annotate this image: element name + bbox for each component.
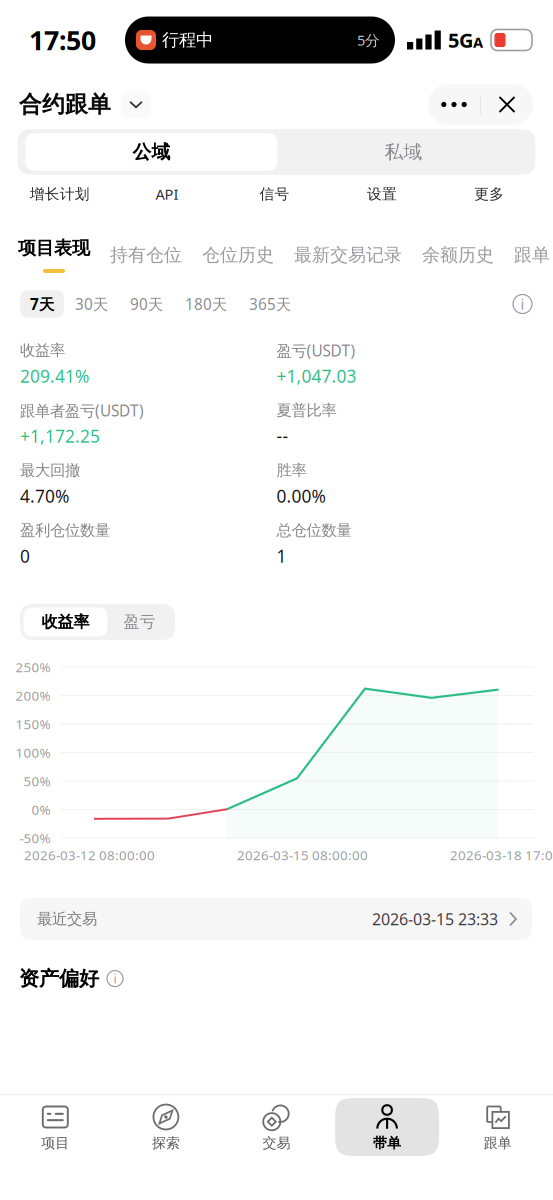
button[interactable]: 跟单 xyxy=(442,1098,553,1156)
staticText: +1,047.03 xyxy=(276,364,356,388)
staticText: 资产偏好 xyxy=(19,966,99,991)
button[interactable]: 30天 xyxy=(64,290,119,318)
staticText: 150% xyxy=(15,715,50,733)
staticText: i xyxy=(113,970,116,987)
staticText: -50% xyxy=(19,829,50,847)
staticText: 90天 xyxy=(130,294,163,314)
staticText: 17:50 xyxy=(29,22,96,58)
staticText: 209.41% xyxy=(20,364,89,388)
staticText: 最大回撤 xyxy=(20,461,80,480)
staticText: 100% xyxy=(15,743,50,762)
button[interactable]: 设置 xyxy=(328,179,436,209)
staticText: 5分 xyxy=(357,30,380,50)
staticText: 项目 xyxy=(41,1134,69,1152)
button[interactable]: 365天 xyxy=(238,290,302,318)
staticText: 持有仓位 xyxy=(110,244,182,266)
staticText: 盈利仓位数量 xyxy=(20,521,110,540)
staticText: 探索 xyxy=(152,1134,180,1152)
staticText: 7天 xyxy=(30,294,54,314)
staticText: 50% xyxy=(23,772,50,790)
button[interactable]: 90天 xyxy=(119,290,174,318)
button[interactable]: 项目表现 xyxy=(18,237,110,273)
button[interactable]: 7天 xyxy=(20,290,64,318)
staticText: +1,172.25 xyxy=(20,424,100,448)
staticText: 4.70% xyxy=(20,484,69,508)
staticText: 盈亏(USDT) xyxy=(276,340,355,361)
staticText: 200% xyxy=(15,686,50,705)
staticText: i xyxy=(520,294,524,314)
staticText: 2026-03-15 08:00:00 xyxy=(237,846,368,864)
button[interactable]: 交易 xyxy=(221,1098,332,1156)
button[interactable]: 仓位历史 xyxy=(202,244,294,266)
button[interactable]: 私域 xyxy=(277,133,535,171)
button[interactable]: 最新交易记录 xyxy=(294,244,422,266)
staticText: 30天 xyxy=(75,294,108,314)
staticText: 公域 xyxy=(132,140,170,164)
staticText: 2026-03-12 08:00:00 xyxy=(24,846,155,864)
staticText: 余额历史 xyxy=(422,244,494,266)
staticText: 盈亏 xyxy=(123,612,155,632)
staticText: -- xyxy=(276,424,288,448)
button[interactable]: 探索 xyxy=(111,1098,221,1156)
staticText: 信号 xyxy=(259,185,289,203)
button[interactable]: 项目 xyxy=(0,1098,111,1156)
staticText: 最新交易记录 xyxy=(294,244,402,266)
staticText: 0.00% xyxy=(276,484,325,508)
button[interactable]: 更多 xyxy=(436,179,543,209)
staticText: 1 xyxy=(276,544,286,568)
button[interactable]: Info xyxy=(513,294,532,313)
button[interactable]: 最近交易 xyxy=(20,898,532,940)
staticText: 0 xyxy=(20,544,30,568)
staticText: 行程中 xyxy=(162,29,213,51)
button[interactable]: 增长计划 xyxy=(6,179,113,209)
button[interactable]: 180天 xyxy=(174,290,238,318)
button[interactable]: 信号 xyxy=(221,179,328,209)
button[interactable]: Switch account xyxy=(121,91,151,118)
button[interactable]: More options xyxy=(428,84,480,125)
staticText: 5G xyxy=(448,26,473,54)
button[interactable]: Close xyxy=(481,84,533,125)
staticText: 增长计划 xyxy=(30,185,90,203)
staticText: 设置 xyxy=(367,185,397,203)
staticText: 更多 xyxy=(474,185,504,203)
staticText: 2026-03-18 17:0 xyxy=(450,846,553,864)
staticText: 跟单 xyxy=(484,1134,512,1152)
staticText: 2026-03-15 23:33 xyxy=(372,908,498,930)
staticText: 180天 xyxy=(185,294,227,314)
staticText: API xyxy=(156,184,179,204)
staticText: 跟单 xyxy=(514,244,550,266)
staticText: 项目表现 xyxy=(18,237,90,259)
button[interactable]: API xyxy=(113,179,221,209)
staticText: 0% xyxy=(31,800,50,819)
staticText: 交易 xyxy=(262,1134,290,1152)
staticText: 带单 xyxy=(373,1134,401,1152)
staticText: 胜率 xyxy=(276,461,306,480)
staticText: A xyxy=(473,32,483,52)
button[interactable]: 持有仓位 xyxy=(110,244,202,266)
staticText: 夏普比率 xyxy=(276,401,336,420)
button[interactable]: 带单 xyxy=(332,1098,442,1156)
button[interactable]: 余额历史 xyxy=(422,244,514,266)
button[interactable]: 收益率 xyxy=(23,607,107,636)
staticText: 跟单者盈亏(USDT) xyxy=(20,400,144,421)
staticText: 私域 xyxy=(384,140,422,164)
staticText: 365天 xyxy=(249,294,291,314)
staticText: 合约跟单 xyxy=(19,90,111,119)
staticText: 收益率 xyxy=(20,341,65,360)
staticText: 收益率 xyxy=(41,612,89,632)
button[interactable]: 盈亏 xyxy=(107,607,171,636)
button[interactable]: 公域 xyxy=(25,133,277,171)
staticText: 仓位历史 xyxy=(202,244,274,266)
staticText: 总仓位数量 xyxy=(276,521,351,540)
staticText: 250% xyxy=(15,658,50,676)
staticText: 最近交易 xyxy=(37,909,97,929)
